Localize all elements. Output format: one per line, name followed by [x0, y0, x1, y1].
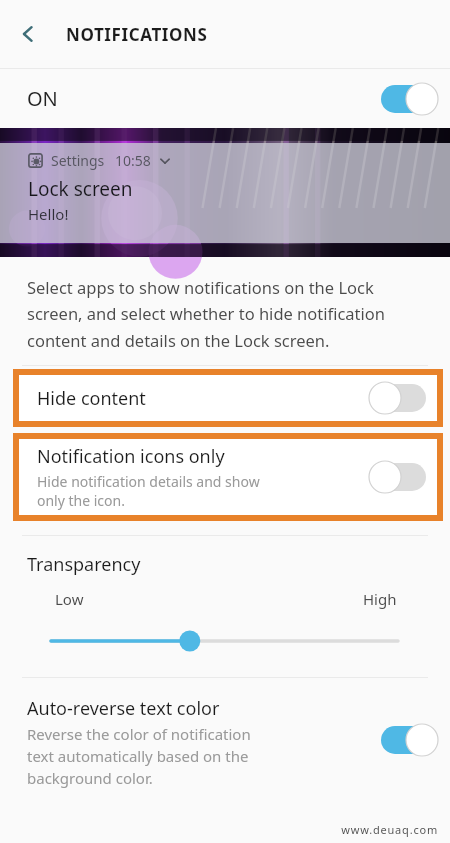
staticText: Hello!	[28, 204, 69, 224]
staticText: Auto-reverse text color	[27, 696, 220, 721]
staticText: Transparency	[27, 552, 141, 577]
staticText: Settings	[51, 151, 105, 170]
staticText: www.deuaq.com	[341, 822, 438, 837]
button[interactable]: Notification icons only	[19, 439, 437, 515]
button[interactable]: Hide content	[365, 376, 429, 420]
staticText: Lock screen	[28, 176, 133, 202]
staticText: 10:58	[115, 151, 151, 170]
button[interactable]: Notification icons only	[365, 455, 429, 499]
staticText: Notification icons only	[37, 444, 225, 469]
button[interactable]: ON	[0, 69, 450, 128]
staticText: High	[363, 589, 397, 609]
staticText: Hide notification details and show only …	[37, 472, 260, 510]
staticText: NOTIFICATIONS	[66, 23, 208, 46]
staticText: Select apps to show notifications on the…	[27, 276, 428, 352]
button[interactable]: Auto-reverse text color	[378, 718, 442, 762]
button[interactable]: Transparency slider	[0, 626, 450, 656]
staticText: Low	[55, 589, 84, 609]
staticText: Reverse the color of notification text a…	[27, 724, 251, 789]
button[interactable]: Hide content	[19, 375, 437, 421]
staticText: ON	[27, 85, 378, 112]
button[interactable]: Notifications on	[378, 77, 442, 121]
staticText: Hide content	[37, 386, 146, 411]
button[interactable]: Auto-reverse text color	[0, 678, 450, 822]
button[interactable]: Back	[0, 6, 56, 62]
